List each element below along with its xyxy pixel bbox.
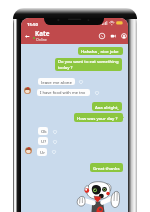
button[interactable]: Aaa alright,	[92, 102, 122, 111]
button[interactable]: Like	[94, 90, 100, 96]
staticText: Online	[36, 37, 47, 42]
button[interactable]: More options	[119, 31, 128, 40]
button[interactable]: Ur	[37, 148, 47, 156]
staticText: leave me alone	[41, 79, 72, 85]
staticText: Hahaha , nice joke	[81, 48, 119, 54]
button[interactable]: Kate avatar	[24, 87, 31, 94]
button[interactable]: U?	[38, 137, 48, 145]
button[interactable]: Like	[52, 129, 58, 135]
button[interactable]: Great thanks	[90, 163, 123, 172]
button[interactable]: Back	[22, 32, 31, 41]
staticText: Do you want to eat something today ?	[58, 59, 121, 70]
staticText: I have food with me tnx	[40, 90, 86, 95]
button[interactable]: Call	[97, 31, 106, 40]
staticText: Kate	[35, 29, 50, 38]
staticText: Ok	[41, 128, 47, 134]
button[interactable]: Like	[52, 139, 58, 145]
button[interactable]: Video call	[108, 31, 117, 40]
staticText: How was your day ?	[77, 115, 118, 121]
button[interactable]: Kate avatar	[25, 147, 32, 154]
button[interactable]: How was your day ?	[74, 113, 123, 122]
button[interactable]: Do you want to eat something today ?	[55, 58, 122, 71]
staticText: Ur	[40, 149, 45, 155]
button[interactable]: Ok	[38, 127, 48, 135]
staticText: 15:50	[27, 21, 38, 27]
staticText: Great thanks	[93, 165, 120, 171]
button[interactable]: I have food with me tnx	[37, 89, 90, 96]
staticText: Aaa alright,	[95, 104, 119, 110]
button[interactable]: Like	[78, 79, 84, 85]
button[interactable]: Like	[51, 149, 57, 155]
staticText: U?	[41, 138, 47, 144]
button[interactable]: leave me alone	[38, 78, 75, 85]
other: Dog sticker	[73, 181, 121, 212]
button[interactable]: Hahaha , nice joke	[78, 47, 123, 55]
